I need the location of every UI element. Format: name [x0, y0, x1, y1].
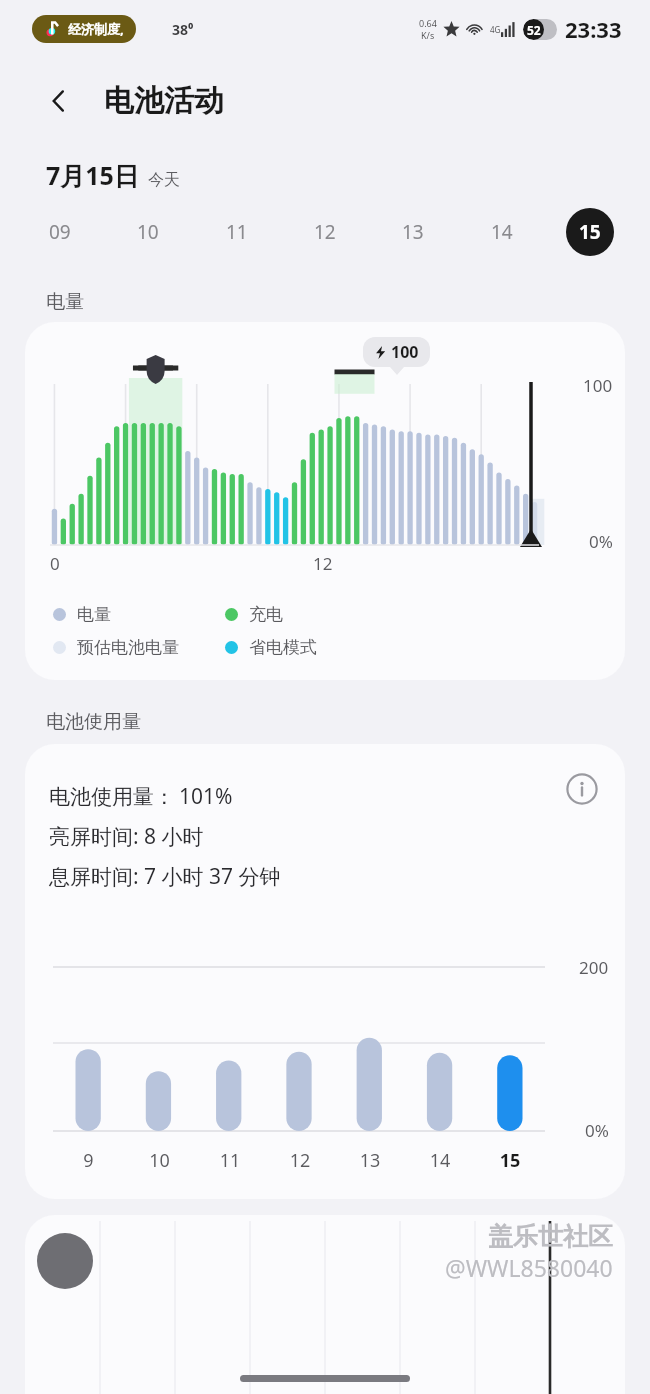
button[interactable]: 11	[213, 208, 261, 256]
staticText: 电池活动	[104, 82, 224, 120]
staticText: 101%	[179, 782, 233, 811]
staticText: @WWL8580040	[445, 1252, 613, 1283]
staticText: 经济制度,	[68, 20, 124, 38]
staticText: 15	[475, 1148, 545, 1173]
staticText: 13	[402, 219, 424, 245]
staticText: 13	[335, 1148, 405, 1173]
staticText: 11	[195, 1148, 265, 1173]
button[interactable]: 15	[566, 208, 614, 256]
staticText: K/s	[421, 29, 435, 41]
staticText: 0	[50, 552, 60, 575]
staticText: 电池使用量	[46, 710, 141, 734]
staticText: 12	[314, 219, 336, 245]
button[interactable]: 14	[478, 208, 526, 256]
button[interactable]: Info	[561, 768, 603, 810]
staticText: 盖乐世社区	[488, 1221, 613, 1252]
staticText: 15	[579, 219, 601, 245]
staticText: 7月15日	[46, 158, 139, 192]
staticText: 12	[265, 1148, 335, 1173]
staticText: 14	[491, 219, 513, 245]
staticText: 0%	[585, 1119, 609, 1142]
staticText: 电量	[77, 604, 111, 625]
button[interactable]: 100	[25, 322, 625, 680]
staticText: 100	[583, 374, 613, 397]
button[interactable]: 12	[301, 208, 349, 256]
staticText: 电量	[46, 290, 84, 314]
staticText: 10	[124, 1148, 195, 1173]
staticText: 4G	[490, 24, 501, 35]
staticText: 电池使用量：	[49, 784, 175, 810]
button[interactable]: 电池使用量：	[25, 744, 625, 1199]
staticText: 0.64	[419, 17, 437, 29]
staticText: 0%	[589, 530, 613, 553]
button[interactable]: 10	[124, 208, 172, 256]
staticText: 100	[391, 341, 419, 363]
staticText: 14	[405, 1148, 475, 1173]
staticText: 23:33	[565, 14, 622, 44]
staticText: 省电模式	[249, 637, 317, 658]
staticText: 今天	[148, 170, 180, 190]
staticText: 52	[527, 22, 541, 38]
staticText: 11	[226, 219, 248, 245]
staticText: 9	[53, 1148, 124, 1173]
staticText: 预估电池电量	[77, 637, 179, 658]
staticText: 10	[137, 219, 159, 245]
button[interactable]: 09	[36, 208, 84, 256]
staticText: 充电	[249, 604, 283, 625]
button[interactable]: 盖乐世社区	[25, 1215, 625, 1394]
staticText: 12	[313, 552, 333, 575]
staticText: 亮屏时间: 8 小时	[49, 822, 204, 851]
staticText: 38⁰	[172, 20, 194, 39]
button[interactable]: Back	[36, 78, 82, 124]
staticText: 200	[579, 956, 609, 979]
button[interactable]: 13	[389, 208, 437, 256]
staticText: 09	[49, 219, 71, 245]
staticText: 息屏时间: 7 小时 37 分钟	[49, 862, 281, 891]
